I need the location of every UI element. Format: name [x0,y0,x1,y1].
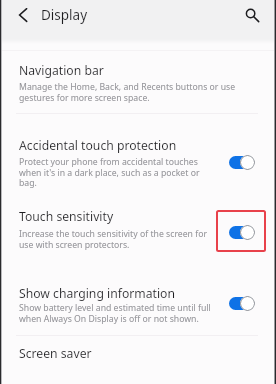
button[interactable]: Toggle setting on or off [229,295,256,311]
staticText: Increase the touch sensitivity of the sc… [19,228,208,251]
button[interactable]: Search [238,1,266,29]
button[interactable] [0,280,276,332]
staticText: Screen saver [19,345,92,362]
staticText: Navigation bar [19,62,104,79]
staticText: Touch sensitivity [19,208,114,225]
staticText: Accidental touch protection [19,137,177,154]
button[interactable] [0,130,276,196]
button[interactable]: Back [9,2,37,30]
button[interactable]: Toggle setting on or off [229,224,256,240]
staticText: Manage the Home, Back, and Recents butto… [19,81,236,104]
staticText: Protect your phone from accidental touch… [19,156,200,189]
button[interactable]: Toggle setting on or off [229,154,256,170]
staticText: Display [41,6,88,24]
button[interactable] [0,52,276,112]
button[interactable] [0,202,276,254]
staticText: Show charging information [19,285,176,302]
staticText: Show battery level and estimated time un… [19,302,211,325]
button[interactable] [0,340,276,382]
